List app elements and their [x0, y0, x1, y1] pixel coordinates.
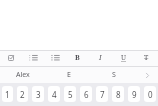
staticText: 5 [68, 89, 73, 100]
staticText: 4 [52, 89, 57, 100]
button[interactable]: Numbered list [44, 51, 66, 66]
staticText: I [99, 53, 102, 63]
staticText: 2 [20, 89, 25, 100]
staticText: Alex [16, 70, 30, 80]
button[interactable]: Alex [0, 67, 46, 83]
staticText: 8 [116, 89, 121, 100]
staticText: 9 [132, 89, 137, 100]
button[interactable]: 3 [32, 86, 44, 102]
button[interactable]: 1 [2, 86, 13, 102]
button[interactable]: 7 [96, 86, 108, 102]
button[interactable]: E [46, 67, 91, 83]
button[interactable]: Checklist [0, 51, 22, 66]
button[interactable]: 8 [112, 86, 124, 102]
button[interactable]: 0 [144, 86, 156, 102]
button[interactable]: Bulleted list [22, 51, 44, 66]
button[interactable]: Strikethrough [135, 51, 158, 66]
button[interactable]: 5 [64, 86, 76, 102]
staticText: T [144, 53, 149, 63]
staticText: 7 [100, 89, 105, 100]
button[interactable]: Underline [112, 51, 135, 66]
button[interactable]: 9 [128, 86, 140, 102]
button[interactable]: Bold [66, 51, 89, 66]
staticText: U [121, 53, 127, 63]
button[interactable]: S [91, 67, 136, 83]
button[interactable]: 2 [17, 86, 28, 102]
staticText: S [112, 70, 116, 80]
staticText: B [75, 53, 80, 63]
button[interactable]: Italic [89, 51, 112, 66]
staticText: 6 [84, 89, 89, 100]
button[interactable]: 4 [48, 86, 60, 102]
staticText: 0 [148, 89, 153, 100]
staticText: 1 [5, 89, 10, 100]
button[interactable]: More suggestions [136, 67, 158, 83]
button[interactable]: 6 [80, 86, 92, 102]
staticText: E [67, 70, 71, 80]
staticText: 3 [36, 89, 41, 100]
